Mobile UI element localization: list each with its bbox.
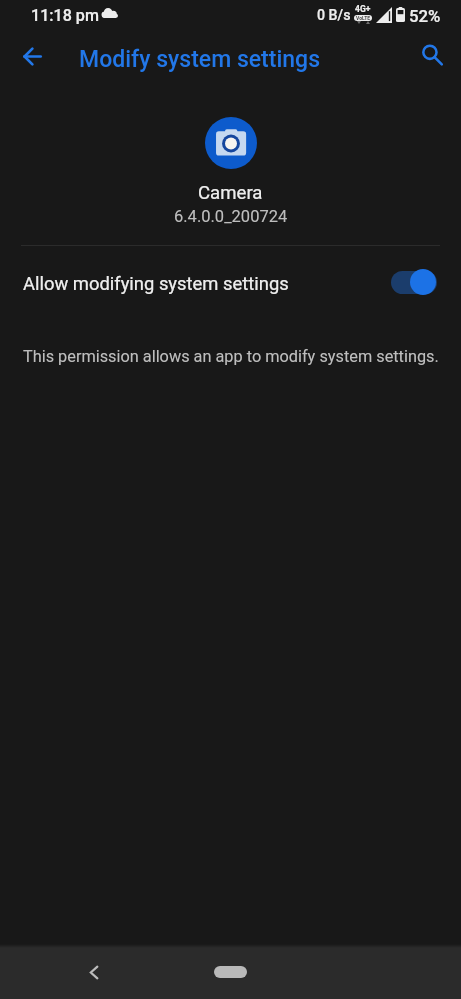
staticText: 11:18 pm xyxy=(31,6,99,25)
staticText: This permission allows an app to modify … xyxy=(23,347,441,366)
button[interactable]: Search xyxy=(408,31,456,79)
staticText: 52% xyxy=(409,6,441,26)
staticText: 4G+ xyxy=(355,4,371,14)
staticText: VoLTE xyxy=(356,15,371,21)
staticText: 0 B/s xyxy=(317,7,351,24)
button[interactable]: Home xyxy=(214,966,247,978)
staticText: Allow modifying system settings xyxy=(23,273,391,295)
button[interactable]: Back xyxy=(8,31,56,79)
button[interactable]: Allow modifying system settings toggle xyxy=(391,269,437,295)
button[interactable]: Back xyxy=(76,954,112,990)
staticText: Camera xyxy=(198,182,263,204)
staticText: 6.4.0.0_200724 xyxy=(174,207,288,226)
button[interactable]: Allow modifying system settings xyxy=(0,246,461,320)
staticText: Modify system settings xyxy=(79,46,321,73)
